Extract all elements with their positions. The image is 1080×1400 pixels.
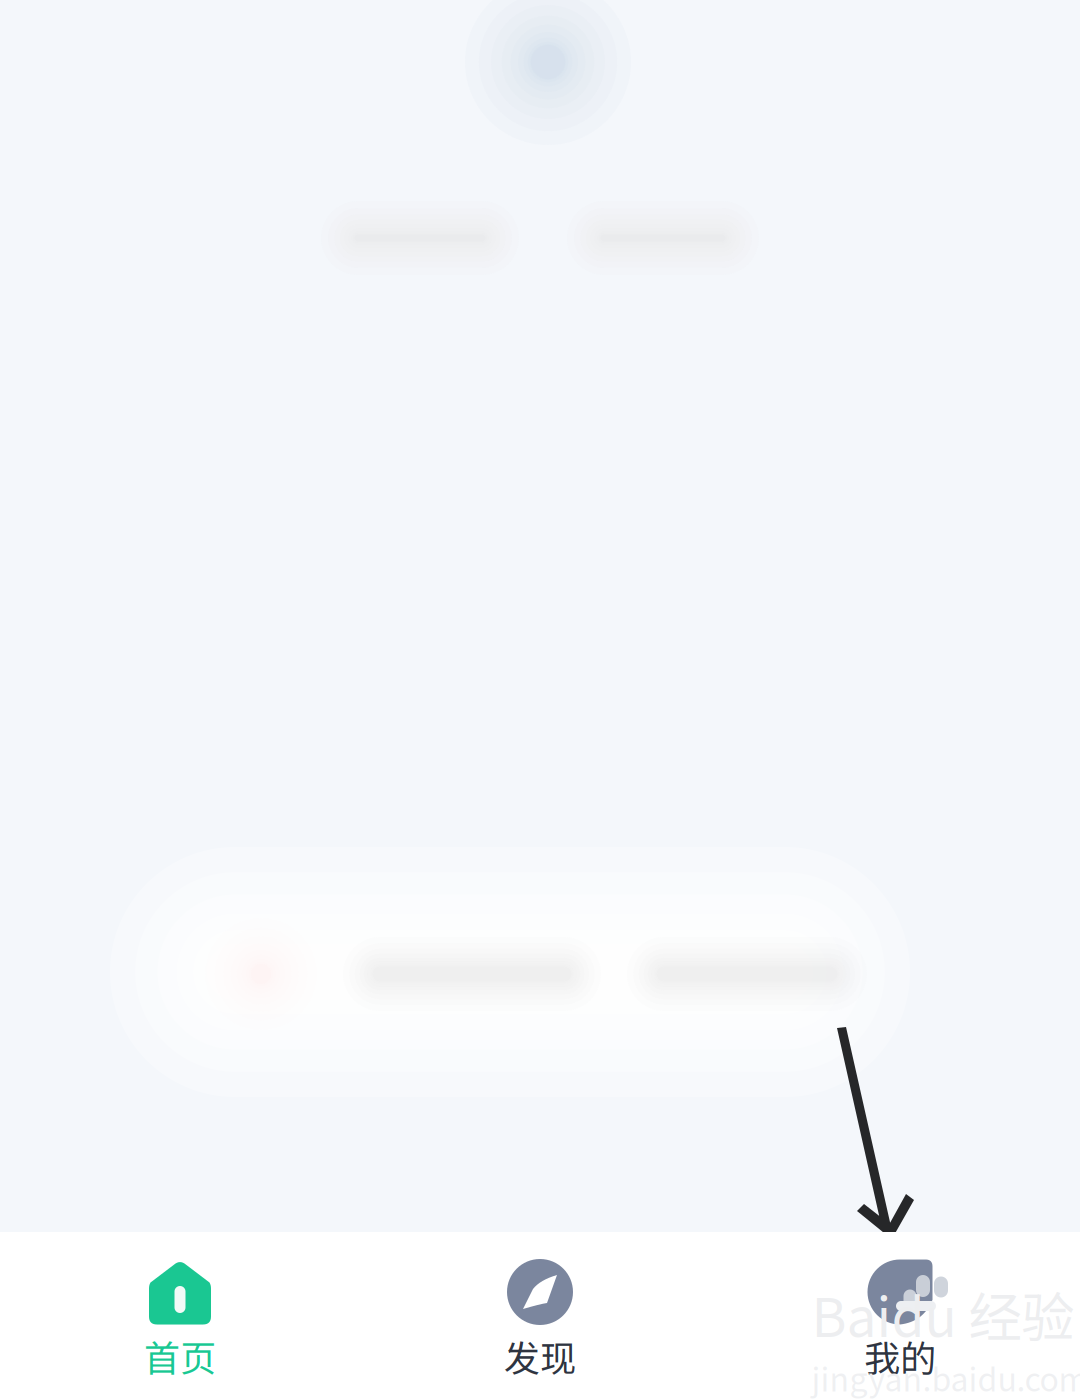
button[interactable]: 我的 [720, 1232, 1080, 1400]
staticText: jingyan.baidu.com [811, 1354, 1080, 1400]
button[interactable]: 首页 [0, 1232, 360, 1400]
staticText: 首页 [144, 1330, 216, 1382]
staticText: Baidu 经验 [811, 1275, 1074, 1352]
staticText: 我的 [864, 1330, 936, 1382]
staticText: 发现 [504, 1330, 576, 1382]
button[interactable]: 发现 [360, 1232, 720, 1400]
